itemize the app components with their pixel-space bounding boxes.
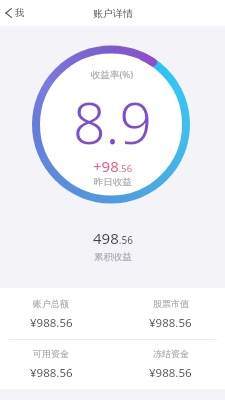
staticText: 累积收益: [94, 251, 132, 263]
staticText: 可用资金: [33, 348, 69, 359]
other: Back: [5, 8, 12, 18]
button[interactable]: 可用资金: [0, 340, 107, 389]
staticText: ¥988.56: [149, 315, 192, 331]
staticText: 498.56: [93, 228, 133, 248]
staticText: 收益率(%): [91, 68, 134, 81]
staticText: 账户详情: [93, 7, 133, 20]
button[interactable]: 账户总额: [0, 290, 107, 339]
staticText: 8.9: [73, 83, 153, 161]
staticText: 股票市值: [153, 298, 189, 309]
button[interactable]: 冻结资金: [114, 340, 225, 389]
button[interactable]: 股票市值: [114, 290, 225, 339]
staticText: 昨日收益: [94, 176, 132, 188]
staticText: 账户总额: [33, 298, 69, 309]
staticText: ¥988.56: [149, 365, 192, 381]
staticText: 冻结资金: [153, 348, 189, 359]
staticText: 我: [15, 7, 25, 19]
button[interactable]: Back: [4, 4, 26, 22]
staticText: +98.56: [93, 156, 133, 176]
staticText: ¥988.56: [30, 365, 73, 381]
staticText: ¥988.56: [30, 315, 73, 331]
